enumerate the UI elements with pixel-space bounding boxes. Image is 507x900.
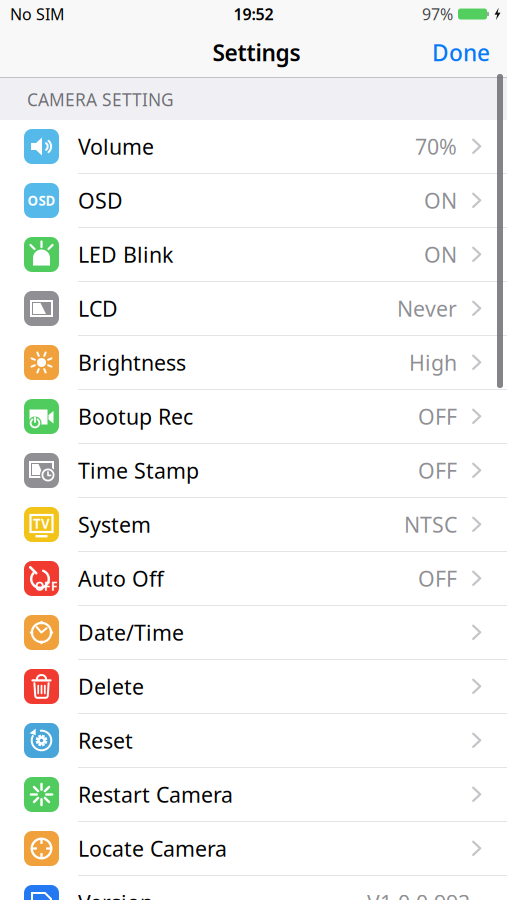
staticText: OFF xyxy=(418,564,457,593)
staticText: Auto Off xyxy=(78,564,164,593)
button[interactable]: Delete xyxy=(0,660,507,714)
button[interactable]: Reset xyxy=(0,714,507,768)
button[interactable]: Locate Camera xyxy=(0,822,507,876)
staticText: Done xyxy=(432,37,490,67)
button[interactable]: Version xyxy=(0,876,507,900)
staticText: OSD xyxy=(27,192,55,209)
staticText: ON xyxy=(424,240,457,269)
staticText: Delete xyxy=(78,672,144,701)
staticText: Brightness xyxy=(78,348,186,377)
staticText: Bootup Rec xyxy=(78,402,193,431)
button[interactable]: LED Blink xyxy=(0,228,507,282)
staticText: System xyxy=(78,510,151,539)
staticText: ON xyxy=(424,186,457,215)
button[interactable]: Done xyxy=(432,37,507,67)
staticText: OFF xyxy=(35,578,58,594)
button[interactable]: LCD xyxy=(0,282,507,336)
staticText: TV xyxy=(33,515,50,532)
staticText: LCD xyxy=(78,294,118,323)
button[interactable]: Restart Camera xyxy=(0,768,507,822)
staticText: Restart Camera xyxy=(78,780,233,809)
staticText: No SIM xyxy=(10,3,65,25)
button[interactable]: Date/Time xyxy=(0,606,507,660)
staticText: 70% xyxy=(415,132,457,161)
button[interactable]: Time Stamp xyxy=(0,444,507,498)
staticText: LED Blink xyxy=(78,240,173,269)
staticText: NTSC xyxy=(404,510,457,539)
staticText: High xyxy=(409,348,457,377)
staticText: 19:52 xyxy=(233,3,273,25)
staticText: Never xyxy=(397,294,457,323)
staticText: Version xyxy=(78,888,153,900)
staticText: OFF xyxy=(418,402,457,431)
staticText: Reset xyxy=(78,726,133,755)
staticText: 97% xyxy=(422,3,453,25)
staticText: OFF xyxy=(418,456,457,485)
staticText: Time Stamp xyxy=(78,456,199,485)
staticText: Settings xyxy=(212,37,300,67)
staticText: OSD xyxy=(78,186,123,215)
staticText: Locate Camera xyxy=(78,834,227,863)
button[interactable]: Brightness xyxy=(0,336,507,390)
button[interactable]: OSD xyxy=(0,174,507,228)
button[interactable]: OFF xyxy=(0,552,507,606)
staticText: CAMERA SETTING xyxy=(27,88,174,111)
button[interactable]: Bootup Rec xyxy=(0,390,507,444)
button[interactable]: TV xyxy=(0,498,507,552)
button[interactable]: Volume xyxy=(0,120,507,174)
staticText: Volume xyxy=(78,132,154,161)
staticText: V1.0.0.992 xyxy=(367,888,470,900)
staticText: Date/Time xyxy=(78,618,184,647)
